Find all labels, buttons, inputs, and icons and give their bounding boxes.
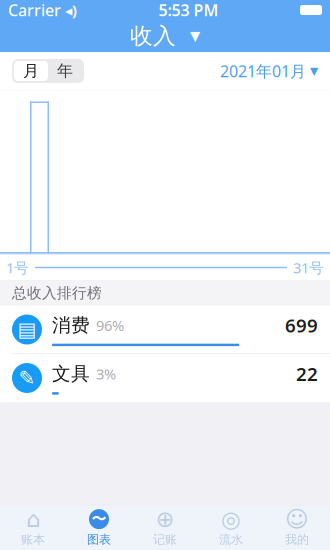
staticText: 我的 [285,532,309,547]
staticText: ◎ [221,506,241,532]
staticText: ▼ [310,65,318,77]
staticText: 699 [285,313,318,338]
staticText: ▤ [17,318,36,341]
staticText: 3% [96,364,116,383]
button[interactable]: ✎ [0,354,330,402]
staticText: 消费 [52,314,90,337]
staticText: 年 [57,61,73,81]
staticText: 流水 [219,532,243,547]
staticText: ☺ [285,506,309,532]
button[interactable]: 年 [48,61,82,81]
staticText: 图表 [87,532,111,547]
button[interactable]: 收入 [116,20,214,52]
staticText: 总收入排行榜 [12,284,102,302]
staticText: 账本 [21,532,45,547]
staticText: 5:53 PM [158,0,218,21]
staticText: 31号 [293,258,324,277]
staticText: 1号 [6,258,29,277]
staticText: 96% [96,315,124,335]
staticText: 文具 [52,362,90,385]
staticText: ⌂ [26,506,40,532]
staticText: 22 [296,361,318,386]
button[interactable]: 月 [14,61,48,81]
staticText: 月 [23,61,39,81]
button[interactable]: ◎ [198,506,264,550]
staticText: 记账 [153,532,177,547]
staticText: ✎ [18,367,35,389]
staticText: ◂) [65,0,77,20]
staticText: ▼ [190,28,200,43]
button[interactable]: ⌂ [0,506,66,550]
button[interactable]: ☺ [264,506,330,550]
staticText: ⊕ [155,506,174,532]
button[interactable]: ▤ [0,305,330,353]
button[interactable]: 2021年01月 [220,54,318,88]
staticText: 2021年01月 [220,60,306,82]
staticText: 〜 [91,510,106,528]
staticText: 收入 [130,22,176,50]
button[interactable]: 〜 [66,506,132,550]
staticText: Carrier [8,0,61,21]
button[interactable]: ⊕ [132,506,198,550]
